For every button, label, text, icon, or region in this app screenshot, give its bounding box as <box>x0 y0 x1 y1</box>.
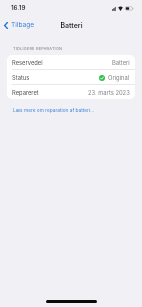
staticText: Batteri <box>60 21 83 29</box>
staticText: 23. marts 2023 <box>88 89 130 96</box>
staticText: Batteri <box>112 59 130 66</box>
button[interactable]: Tilbage <box>0 19 39 31</box>
button[interactable]: Status <box>7 70 135 84</box>
staticText: TIDLIGERE REPARATION <box>13 46 63 51</box>
staticText: Original <box>108 74 130 81</box>
button[interactable]: Læs mere om reparation af batteri… <box>13 107 95 113</box>
staticText: Reservedel <box>12 59 43 66</box>
staticText: 16.19 <box>11 4 26 12</box>
button[interactable]: Reservedel <box>7 55 135 69</box>
staticText: Tilbage <box>11 21 35 29</box>
staticText: Status <box>12 74 30 81</box>
button[interactable]: Repareret <box>7 85 135 99</box>
staticText: Repareret <box>12 89 39 96</box>
staticText: Læs mere om reparation af batteri… <box>13 107 95 113</box>
